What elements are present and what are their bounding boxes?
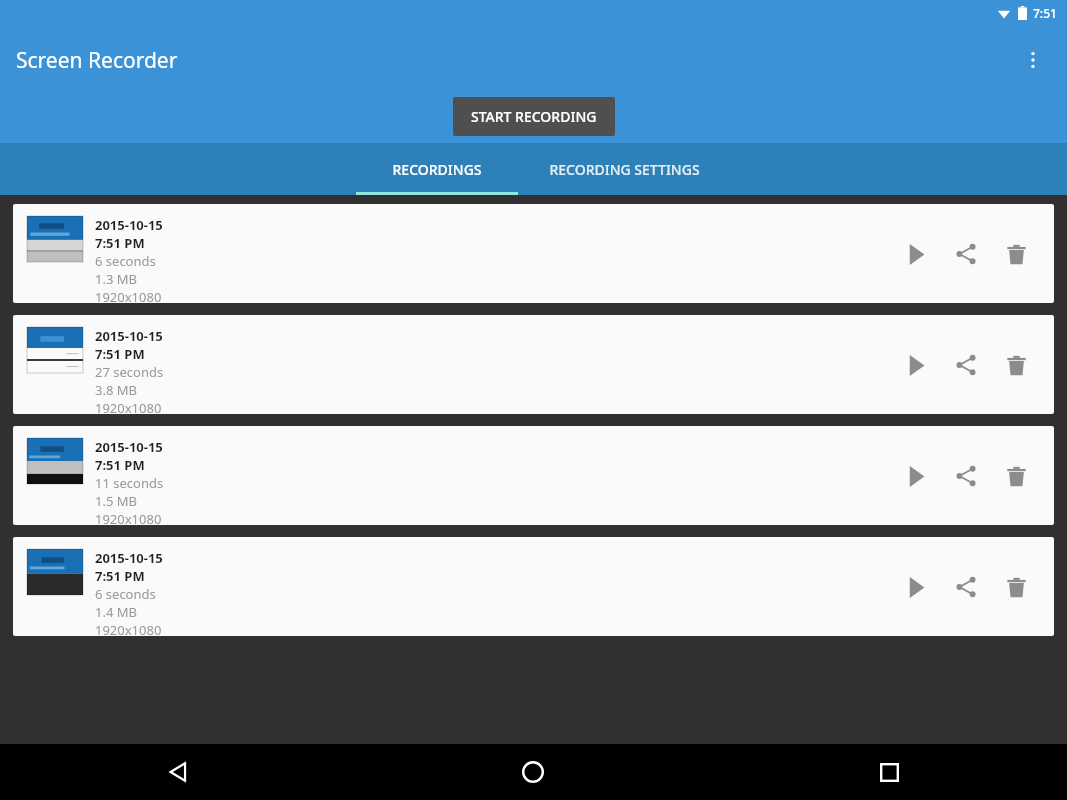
staticText: 1920x1080 (95, 288, 162, 303)
staticText: 6 seconds (95, 585, 156, 603)
button[interactable]: 2015-10-15 (13, 537, 1054, 636)
button[interactable]: Delete (994, 232, 1038, 276)
staticText: 1920x1080 (95, 510, 162, 525)
button[interactable]: 2015-10-15 (13, 204, 1054, 303)
button[interactable]: Play (894, 343, 938, 387)
staticText: Screen Recorder (16, 46, 178, 75)
staticText: 1920x1080 (95, 621, 162, 636)
staticText: 6 seconds (95, 252, 156, 270)
button[interactable]: Play (894, 454, 938, 498)
staticText: RECORDING SETTINGS (549, 160, 700, 179)
button[interactable]: Back (0, 744, 355, 800)
staticText: 1.5 MB (95, 492, 137, 510)
staticText: 1.4 MB (95, 603, 137, 621)
button[interactable]: Home (355, 744, 711, 800)
button[interactable]: More options (1015, 42, 1051, 78)
staticText: 7:51 PM (95, 345, 145, 363)
staticText: 27 seconds (95, 363, 164, 381)
button[interactable]: Share (944, 232, 988, 276)
staticText: 2015-10-15 (95, 216, 163, 234)
button[interactable]: RECORDING SETTINGS (518, 143, 730, 195)
button[interactable]: Share (944, 565, 988, 609)
staticText: RECORDINGS (392, 160, 482, 179)
button[interactable]: Share (944, 343, 988, 387)
staticText: 2015-10-15 (95, 549, 163, 567)
button[interactable]: Recents (711, 744, 1067, 800)
button[interactable]: Play (894, 232, 938, 276)
button[interactable]: 2015-10-15 (13, 426, 1054, 525)
staticText: 3.8 MB (95, 381, 137, 399)
button[interactable]: RECORDINGS (356, 143, 518, 195)
staticText: 2015-10-15 (95, 438, 163, 456)
staticText: 2015-10-15 (95, 327, 163, 345)
button[interactable]: Delete (994, 565, 1038, 609)
staticText: 7:51 PM (95, 456, 145, 474)
button[interactable]: Delete (994, 343, 1038, 387)
staticText: 11 seconds (95, 474, 164, 492)
button[interactable]: Delete (994, 454, 1038, 498)
staticText: 1920x1080 (95, 399, 162, 414)
button[interactable]: START RECORDING (453, 97, 615, 136)
button[interactable]: Share (944, 454, 988, 498)
staticText: START RECORDING (471, 107, 597, 126)
staticText: 7:51 PM (95, 234, 145, 252)
button[interactable]: 2015-10-15 (13, 315, 1054, 414)
staticText: 1.3 MB (95, 270, 137, 288)
button[interactable]: Play (894, 565, 938, 609)
staticText: 7:51 PM (95, 567, 145, 585)
staticText: 7:51 (1033, 5, 1057, 21)
